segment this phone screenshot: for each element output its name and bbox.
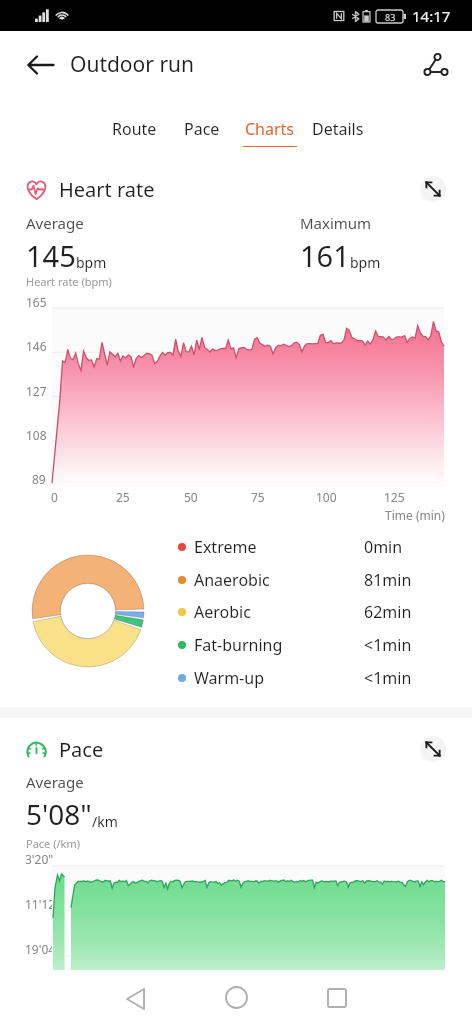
staticText: 25 bbox=[116, 489, 130, 505]
staticText: 5'08" bbox=[26, 795, 92, 833]
staticText: 81min bbox=[364, 569, 412, 591]
staticText: 161 bbox=[300, 236, 350, 275]
button[interactable]: Fat-burning bbox=[170, 630, 448, 660]
staticText: bpm bbox=[350, 253, 381, 272]
staticText: 100 bbox=[316, 489, 337, 505]
staticText: Heart rate bbox=[59, 176, 155, 203]
staticText: Aerobic bbox=[194, 601, 251, 623]
staticText: Route bbox=[112, 118, 157, 140]
staticText: 145 bbox=[26, 236, 76, 275]
staticText: Heart rate (bpm) bbox=[26, 274, 112, 289]
staticText: 165 bbox=[26, 294, 47, 310]
staticText: 108 bbox=[26, 427, 47, 443]
button[interactable]: Share bbox=[416, 45, 456, 85]
button[interactable]: Back bbox=[18, 42, 64, 88]
staticText: Anaerobic bbox=[194, 569, 270, 591]
staticText: Warm-up bbox=[194, 667, 264, 689]
staticText: Time (min) bbox=[385, 507, 445, 523]
button[interactable]: Home bbox=[200, 971, 272, 1024]
staticText: Charts bbox=[245, 118, 295, 140]
button[interactable]: Recents bbox=[301, 971, 373, 1024]
staticText: 127 bbox=[26, 383, 47, 399]
staticText: Pace bbox=[184, 118, 220, 140]
staticText: 83 bbox=[385, 11, 396, 23]
staticText: Details bbox=[312, 118, 364, 140]
staticText: Extreme bbox=[194, 536, 257, 558]
button[interactable]: Pace bbox=[168, 118, 236, 149]
button[interactable]: Expand chart bbox=[420, 176, 446, 202]
staticText: bpm bbox=[76, 253, 107, 272]
staticText: /km bbox=[92, 812, 118, 831]
staticText: 0 bbox=[51, 489, 58, 505]
button[interactable]: Back bbox=[99, 971, 171, 1024]
button[interactable]: Route bbox=[100, 118, 168, 149]
button[interactable]: Aerobic bbox=[170, 597, 448, 627]
staticText: Average bbox=[26, 213, 84, 233]
staticText: 19'04" bbox=[25, 941, 61, 957]
staticText: Pace (/km) bbox=[26, 836, 81, 851]
staticText: Pace bbox=[59, 736, 104, 763]
button[interactable]: Warm-up bbox=[170, 663, 448, 693]
button[interactable]: Anaerobic bbox=[170, 565, 448, 595]
staticText: Fat-burning bbox=[194, 634, 283, 656]
staticText: 11'12" bbox=[25, 896, 61, 912]
staticText: 62min bbox=[364, 601, 412, 623]
staticText: 0min bbox=[364, 536, 403, 558]
staticText: <1min bbox=[364, 634, 412, 656]
staticText: 14:17 bbox=[412, 6, 451, 26]
staticText: Maximum bbox=[300, 213, 372, 233]
staticText: Average bbox=[26, 772, 84, 792]
staticText: 75 bbox=[251, 489, 265, 505]
staticText: <1min bbox=[364, 667, 412, 689]
button[interactable]: Expand chart bbox=[420, 736, 446, 762]
staticText: Outdoor run bbox=[70, 50, 195, 79]
staticText: 3'20" bbox=[25, 851, 54, 867]
staticText: 50 bbox=[184, 489, 198, 505]
staticText: 146 bbox=[26, 338, 47, 354]
button[interactable]: Charts bbox=[236, 118, 304, 149]
button[interactable]: Details bbox=[304, 118, 372, 149]
staticText: 125 bbox=[384, 489, 405, 505]
button[interactable]: Extreme bbox=[170, 532, 448, 562]
staticText: 89 bbox=[32, 471, 46, 487]
